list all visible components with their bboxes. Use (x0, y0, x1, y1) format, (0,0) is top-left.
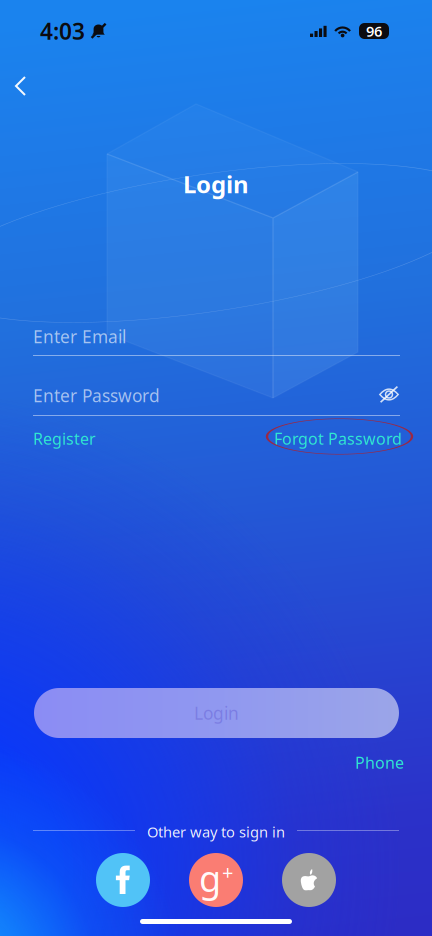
staticText: Enter Password (33, 384, 160, 407)
button[interactable]: Sign in with Facebook (96, 853, 150, 907)
staticText: Register (33, 428, 96, 449)
button[interactable]: Login (34, 688, 399, 738)
staticText: Login (183, 168, 249, 200)
staticText: Forgot Password (274, 428, 402, 449)
staticText: Other way to sign in (147, 822, 285, 841)
button[interactable]: Sign in with Apple (282, 853, 336, 907)
staticText: + (222, 859, 233, 885)
button[interactable]: Register (33, 428, 96, 449)
button[interactable]: Sign in with Google (189, 853, 243, 907)
button[interactable]: Back (2, 65, 40, 107)
staticText: Login (194, 701, 239, 724)
staticText: g (199, 854, 221, 902)
button[interactable]: Show password (379, 385, 399, 404)
staticText: 96 (366, 21, 382, 41)
button[interactable]: Forgot Password (274, 428, 402, 449)
staticText: Phone (355, 752, 404, 773)
button[interactable]: Phone (355, 752, 404, 773)
staticText: 4:03 (40, 16, 85, 46)
staticText: Enter Email (33, 325, 126, 348)
